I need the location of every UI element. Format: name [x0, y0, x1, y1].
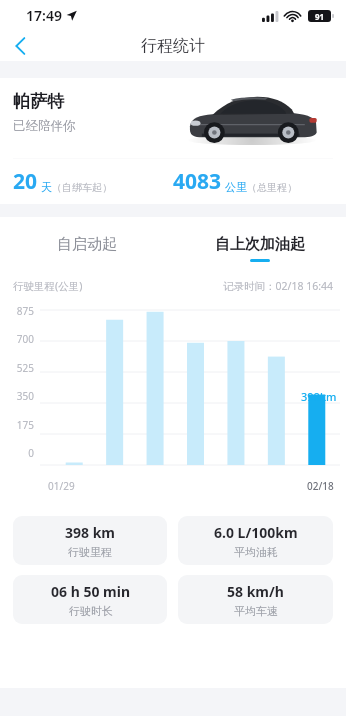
staticText: 700 [16, 332, 34, 346]
staticText: （自绑车起） [52, 181, 112, 194]
button[interactable]: 06 h 50 min [13, 575, 167, 624]
staticText: 天 [41, 180, 52, 194]
staticText: 0 [28, 446, 34, 460]
staticText: 17:49 [26, 6, 62, 25]
button[interactable]: Back [0, 31, 40, 61]
staticText: 01/29 [48, 479, 75, 493]
staticText: 58 km/h [227, 582, 284, 601]
button[interactable]: 自上次加油起 [173, 217, 346, 279]
button[interactable]: 自启动起 [0, 217, 173, 279]
staticText: 记录时间：02/18 16:44 [223, 279, 333, 293]
staticText: 06 h 50 min [51, 582, 130, 601]
staticText: 525 [16, 361, 34, 375]
staticText: 自上次加油起 [215, 235, 305, 254]
staticText: 6.0 L/100km [214, 523, 298, 542]
staticText: 平均车速 [234, 604, 278, 618]
staticText: 875 [16, 304, 34, 318]
staticText: 行程统计 [141, 36, 205, 56]
staticText: 自启动起 [57, 235, 117, 254]
staticText: 02/18 [307, 479, 334, 493]
staticText: 行驶时长 [69, 604, 113, 618]
staticText: 175 [16, 418, 34, 432]
button[interactable]: 6.0 L/100km [178, 516, 333, 565]
staticText: 帕萨特 [13, 91, 64, 112]
staticText: 已经陪伴你 [13, 118, 76, 134]
staticText: 行驶里程 [68, 545, 112, 559]
staticText: 4083 [173, 167, 222, 196]
staticText: （总里程） [247, 181, 297, 194]
staticText: 398 km [65, 523, 115, 542]
staticText: 398km [301, 389, 337, 404]
staticText: 20 [13, 167, 38, 196]
staticText: 平均油耗 [234, 545, 278, 559]
button[interactable]: 58 km/h [178, 575, 333, 624]
staticText: 350 [16, 389, 34, 403]
staticText: 行驶里程(公里) [13, 279, 83, 293]
staticText: 公里 [225, 180, 247, 194]
button[interactable]: 398 km [13, 516, 167, 565]
staticText: 91 [315, 11, 325, 22]
